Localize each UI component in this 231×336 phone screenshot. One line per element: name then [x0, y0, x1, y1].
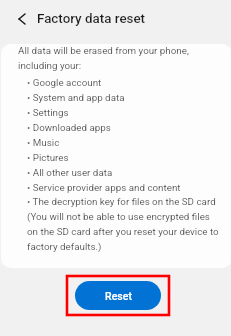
staticText: • Google account • System and app data •… [27, 77, 181, 194]
button[interactable]: Navigate up [8, 5, 36, 33]
staticText: • The decryption key for files on the SD… [27, 196, 219, 253]
staticText: Reset [105, 290, 132, 302]
button[interactable]: Reset [75, 281, 161, 310]
staticText: Factory data reset [37, 11, 146, 27]
staticText: All data will be erased from your phone,… [18, 45, 189, 72]
